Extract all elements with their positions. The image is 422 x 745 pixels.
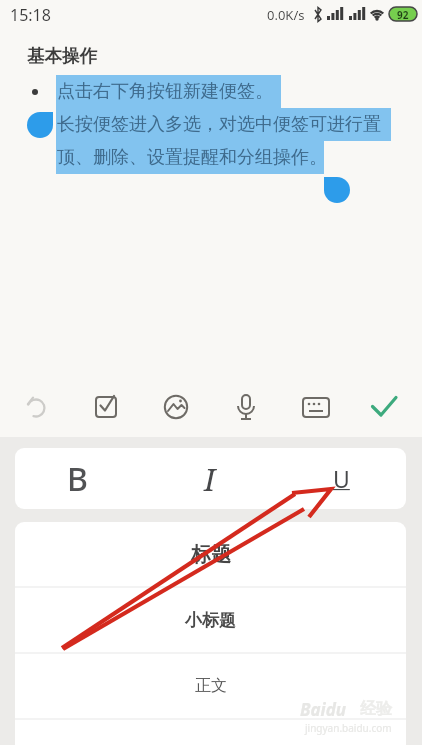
button[interactable] xyxy=(10,383,58,431)
button[interactable]: 小标题 xyxy=(15,587,406,653)
button[interactable] xyxy=(152,383,200,431)
button[interactable]: B xyxy=(47,448,107,509)
staticText: 0.0K/s xyxy=(267,6,305,24)
staticText: 经验 xyxy=(360,699,392,719)
staticText: I xyxy=(204,458,216,500)
staticText: Baidu xyxy=(300,698,347,721)
button[interactable] xyxy=(82,383,130,431)
button[interactable]: I xyxy=(180,448,240,509)
staticText: 15:18 xyxy=(10,4,51,26)
button[interactable]: 正文 xyxy=(15,653,406,719)
staticText: 小标题 xyxy=(185,610,236,631)
button[interactable]: 标题 xyxy=(15,522,406,587)
staticText: 点击右下角按钮新建便签。 xyxy=(57,80,273,103)
button[interactable] xyxy=(360,383,408,431)
staticText: 顶、删除、设置提醒和分组操作。 xyxy=(57,146,327,169)
staticText: 长按便签进入多选，对选中便签可进行置 xyxy=(57,113,381,136)
staticText: 正文 xyxy=(195,676,227,696)
button[interactable] xyxy=(292,383,340,431)
staticText: B xyxy=(67,457,88,501)
staticText: U xyxy=(333,463,350,494)
staticText: 92 xyxy=(397,8,409,22)
staticText: 标题 xyxy=(191,542,231,567)
staticText: 基本操作 xyxy=(27,45,97,67)
button[interactable]: U xyxy=(311,448,371,509)
button[interactable] xyxy=(222,383,270,431)
staticText: jingyan.baidu.com xyxy=(305,721,392,735)
